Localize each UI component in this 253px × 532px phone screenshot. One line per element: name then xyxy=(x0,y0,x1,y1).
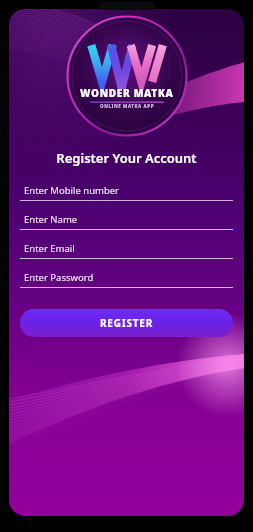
staticText: Enter Email xyxy=(24,242,75,255)
staticText: Enter Name xyxy=(24,213,78,226)
button[interactable]: Enter Name xyxy=(20,213,233,230)
staticText: REGISTER xyxy=(100,316,154,330)
staticText: Enter Mobile number xyxy=(24,184,120,197)
button[interactable]: Enter Mobile number xyxy=(20,184,233,201)
staticText: Enter Password xyxy=(24,271,94,284)
button[interactable]: REGISTER xyxy=(20,309,233,337)
staticText: Register Your Account xyxy=(56,149,197,167)
staticText: WONDER MATKA xyxy=(80,86,174,100)
staticText: ONLINE MATKA APP xyxy=(100,103,155,109)
button[interactable]: Enter Password xyxy=(20,271,233,288)
button[interactable]: Enter Email xyxy=(20,242,233,259)
